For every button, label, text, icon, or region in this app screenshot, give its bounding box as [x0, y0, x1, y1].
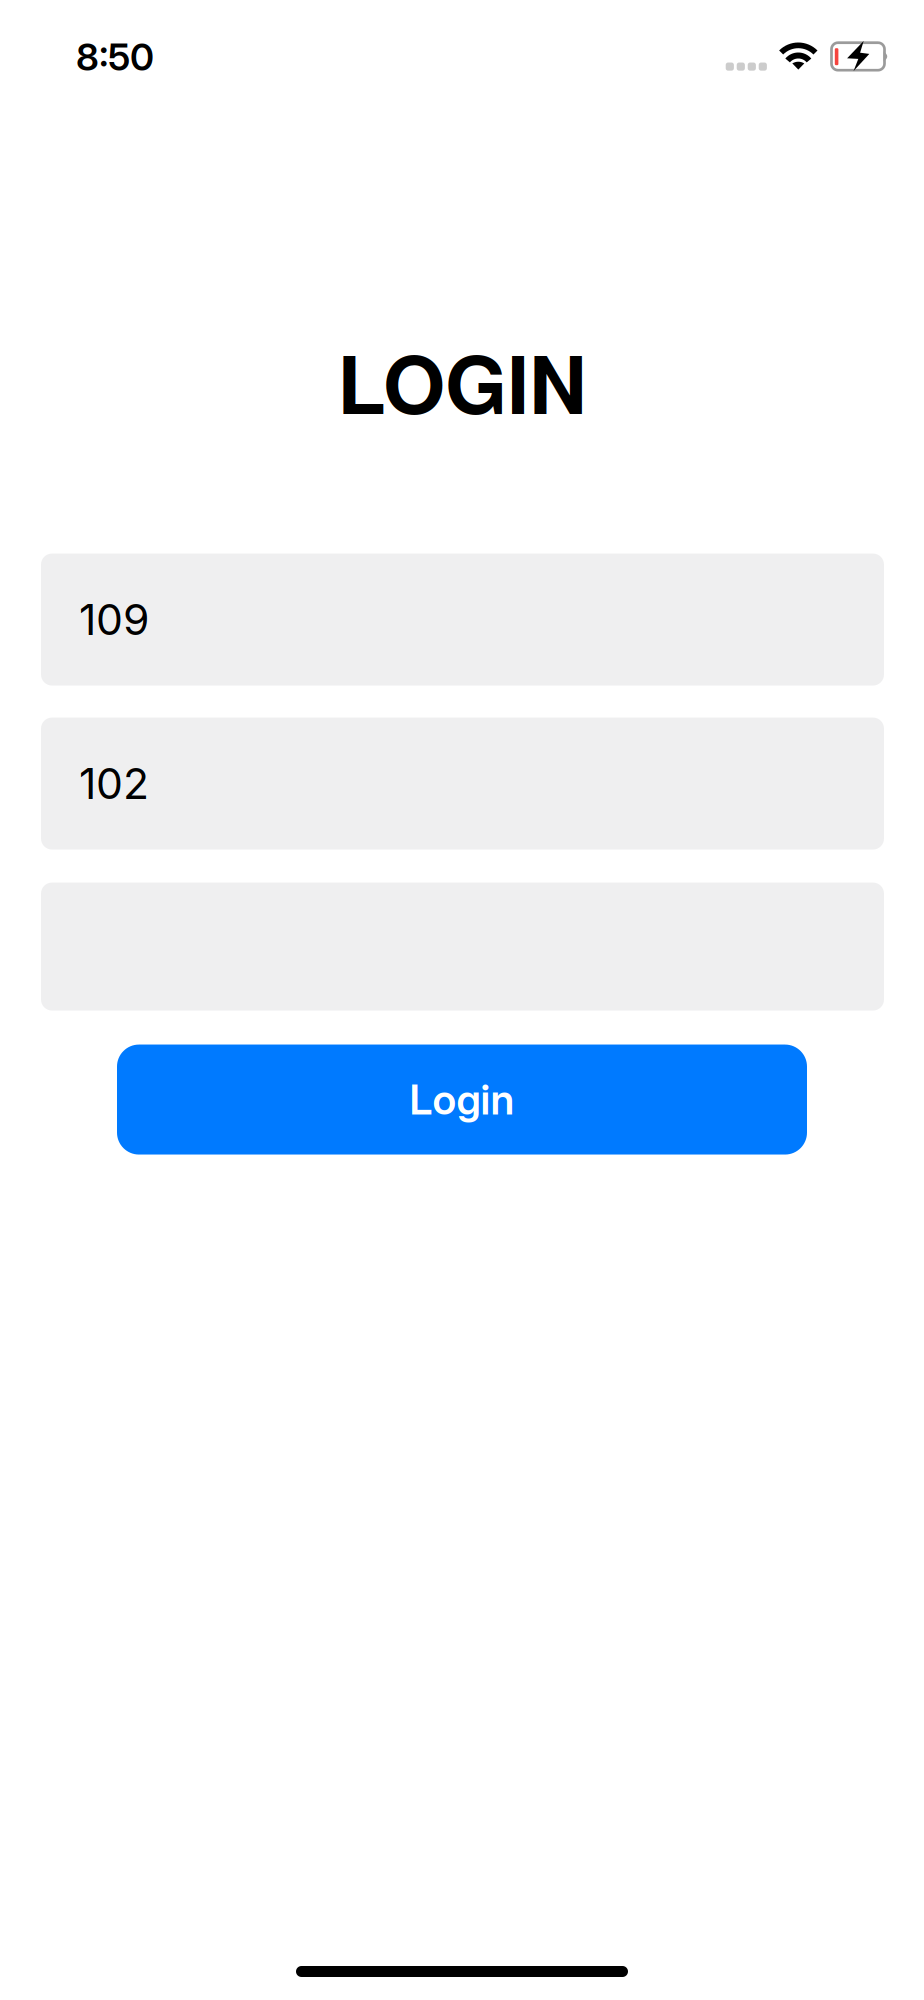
- staticText: Login: [409, 1075, 514, 1125]
- staticText: 109: [79, 594, 149, 645]
- button[interactable]: 102: [41, 718, 884, 850]
- staticText: LOGIN: [337, 324, 587, 439]
- button[interactable]: 109: [41, 554, 884, 686]
- button[interactable]: Login: [117, 1045, 807, 1155]
- staticText: 8:50: [76, 34, 154, 80]
- staticText: 102: [79, 758, 149, 809]
